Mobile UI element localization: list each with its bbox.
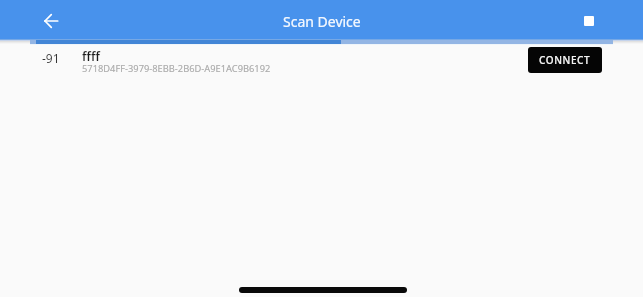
button[interactable]: Stop scanning: [574, 6, 604, 36]
button[interactable]: Back: [35, 5, 67, 37]
button[interactable]: CONNECT: [528, 47, 602, 73]
staticText: CONNECT: [539, 53, 591, 67]
staticText: ffff: [82, 48, 100, 64]
staticText: 5718D4FF-3979-8EBB-2B6D-A9E1AC9B6192: [82, 62, 271, 75]
staticText: -91: [42, 50, 60, 66]
staticText: Scan Device: [283, 12, 361, 31]
button[interactable]: -91: [0, 44, 643, 80]
